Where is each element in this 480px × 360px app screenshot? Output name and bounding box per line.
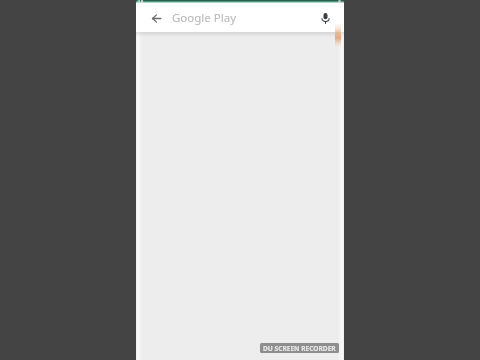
staticText: Google Play <box>172 10 237 26</box>
staticText: DU SCREEN RECORDER <box>263 344 336 353</box>
button[interactable]: Voice search <box>317 10 333 26</box>
button[interactable]: Back <box>149 11 163 25</box>
button[interactable]: Back <box>136 3 344 32</box>
